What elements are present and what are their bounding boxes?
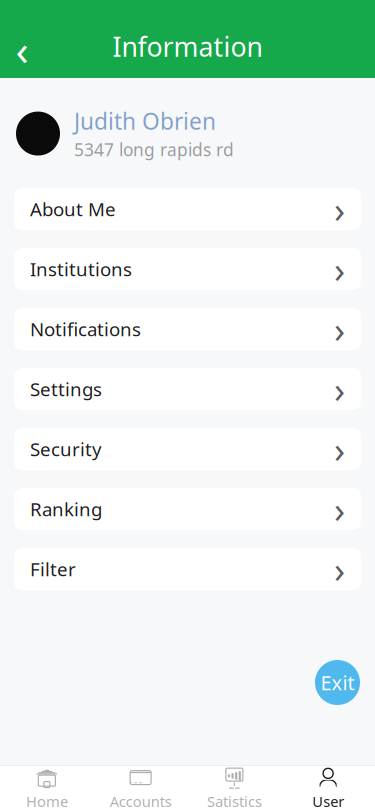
- button[interactable]: Ranking: [14, 488, 361, 530]
- button[interactable]: Institutions: [14, 248, 361, 290]
- staticText: ›: [334, 365, 345, 413]
- button[interactable]: Home: [0, 766, 94, 812]
- staticText: ›: [334, 305, 345, 353]
- staticText: Home: [26, 792, 68, 811]
- button[interactable]: Satistics: [187, 766, 281, 812]
- staticText: ›: [334, 545, 345, 593]
- staticText: Security: [30, 437, 102, 461]
- staticText: Institutions: [30, 257, 132, 281]
- staticText: About Me: [30, 197, 116, 221]
- staticText: User: [312, 792, 344, 811]
- staticText: Satistics: [207, 792, 262, 811]
- staticText: Accounts: [110, 792, 172, 811]
- staticText: ›: [334, 245, 345, 293]
- button[interactable]: Notifications: [14, 308, 361, 350]
- staticText: Information: [112, 29, 262, 64]
- button[interactable]: Back: [0, 29, 44, 69]
- staticText: Exit: [320, 669, 354, 696]
- button[interactable]: Filter: [14, 548, 361, 590]
- staticText: ›: [334, 425, 345, 473]
- staticText: Ranking: [30, 497, 102, 521]
- staticText: Notifications: [30, 317, 141, 341]
- button[interactable]: Exit: [315, 660, 360, 705]
- button[interactable]: Security: [14, 428, 361, 470]
- staticText: Judith Obrien: [74, 106, 216, 136]
- staticText: ›: [334, 185, 345, 233]
- staticText: ‹: [15, 21, 28, 77]
- button[interactable]: User: [281, 766, 375, 812]
- staticText: 5347 long rapids rd: [74, 138, 234, 161]
- button[interactable]: About Me: [14, 188, 361, 230]
- button[interactable]: Settings: [14, 368, 361, 410]
- staticText: Settings: [30, 377, 102, 401]
- button[interactable]: Accounts: [94, 766, 188, 812]
- staticText: Filter: [30, 557, 76, 581]
- staticText: ›: [334, 485, 345, 533]
